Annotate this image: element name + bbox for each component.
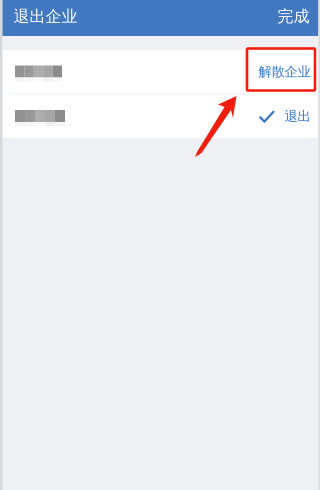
button[interactable]: 企业 2	[2, 94, 318, 138]
button[interactable]: 企业 1	[2, 50, 318, 93]
staticText: 退出	[284, 108, 310, 124]
staticText: 解散企业	[258, 64, 310, 80]
staticText: 退出企业	[13, 7, 77, 26]
button[interactable]: 完成	[268, 0, 318, 36]
button[interactable]: 退出企业	[2, 0, 88, 36]
button[interactable]: 解散企业	[258, 58, 310, 86]
button[interactable]: 退出	[258, 102, 310, 130]
staticText: 完成	[277, 7, 309, 26]
